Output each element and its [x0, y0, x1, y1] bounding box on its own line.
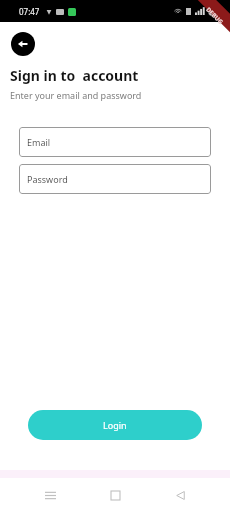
- staticText: DEBUG: [204, 6, 225, 26]
- staticText: Login: [103, 419, 127, 431]
- staticText: Enter your email and password: [10, 89, 142, 101]
- button[interactable]: Back: [11, 32, 35, 56]
- button[interactable]: Email: [19, 127, 211, 157]
- button[interactable]: Home: [100, 480, 130, 510]
- button[interactable]: Login: [28, 410, 202, 440]
- button[interactable]: Password: [19, 164, 211, 194]
- staticText: Sign in to account: [10, 66, 139, 85]
- staticText: Email: [27, 136, 51, 148]
- staticText: Password: [27, 173, 68, 185]
- button[interactable]: Back: [165, 480, 195, 510]
- staticText: 07:47: [19, 6, 40, 17]
- button[interactable]: Recent apps: [35, 480, 65, 510]
